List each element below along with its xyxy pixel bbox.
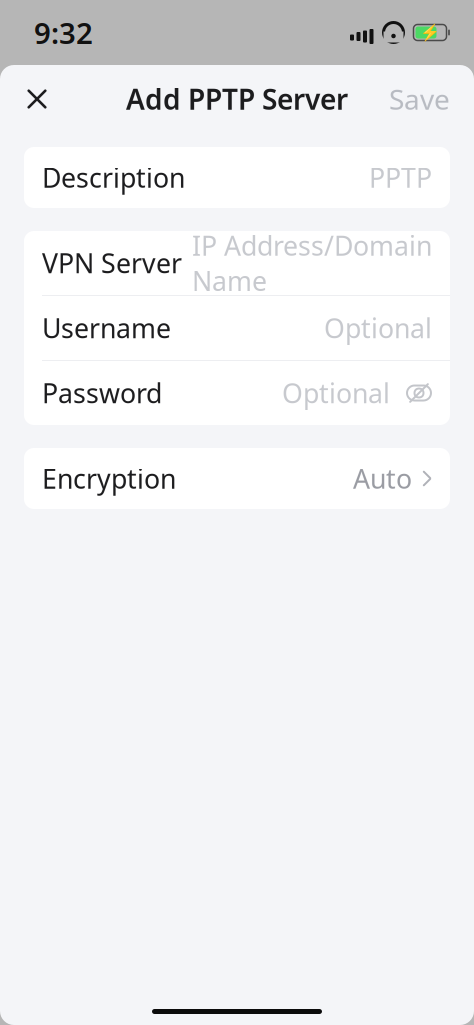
staticText: VPN Server [42, 245, 182, 281]
button[interactable]: Save [381, 73, 458, 125]
staticText: Save [389, 80, 450, 118]
button[interactable]: Username [24, 296, 450, 360]
button[interactable]: Encryption [24, 448, 450, 509]
staticText: Encryption [42, 461, 176, 496]
staticText: IP Address/Domain Name [192, 228, 432, 298]
staticText: Username [42, 310, 171, 346]
staticText: ⚡ [420, 23, 440, 42]
staticText: PPTP [369, 160, 432, 195]
staticText: Auto [353, 461, 412, 496]
staticText: Optional [324, 310, 432, 346]
staticText: Add PPTP Server [126, 80, 348, 118]
staticText: Description [42, 160, 185, 195]
button[interactable]: Close [11, 73, 63, 125]
staticText: Optional [282, 375, 390, 411]
button[interactable]: Description [24, 147, 450, 208]
button[interactable]: VPN Server [24, 231, 450, 295]
staticText: 9:32 [34, 13, 93, 52]
staticText: Password [42, 375, 162, 411]
button[interactable]: Password [24, 361, 450, 425]
